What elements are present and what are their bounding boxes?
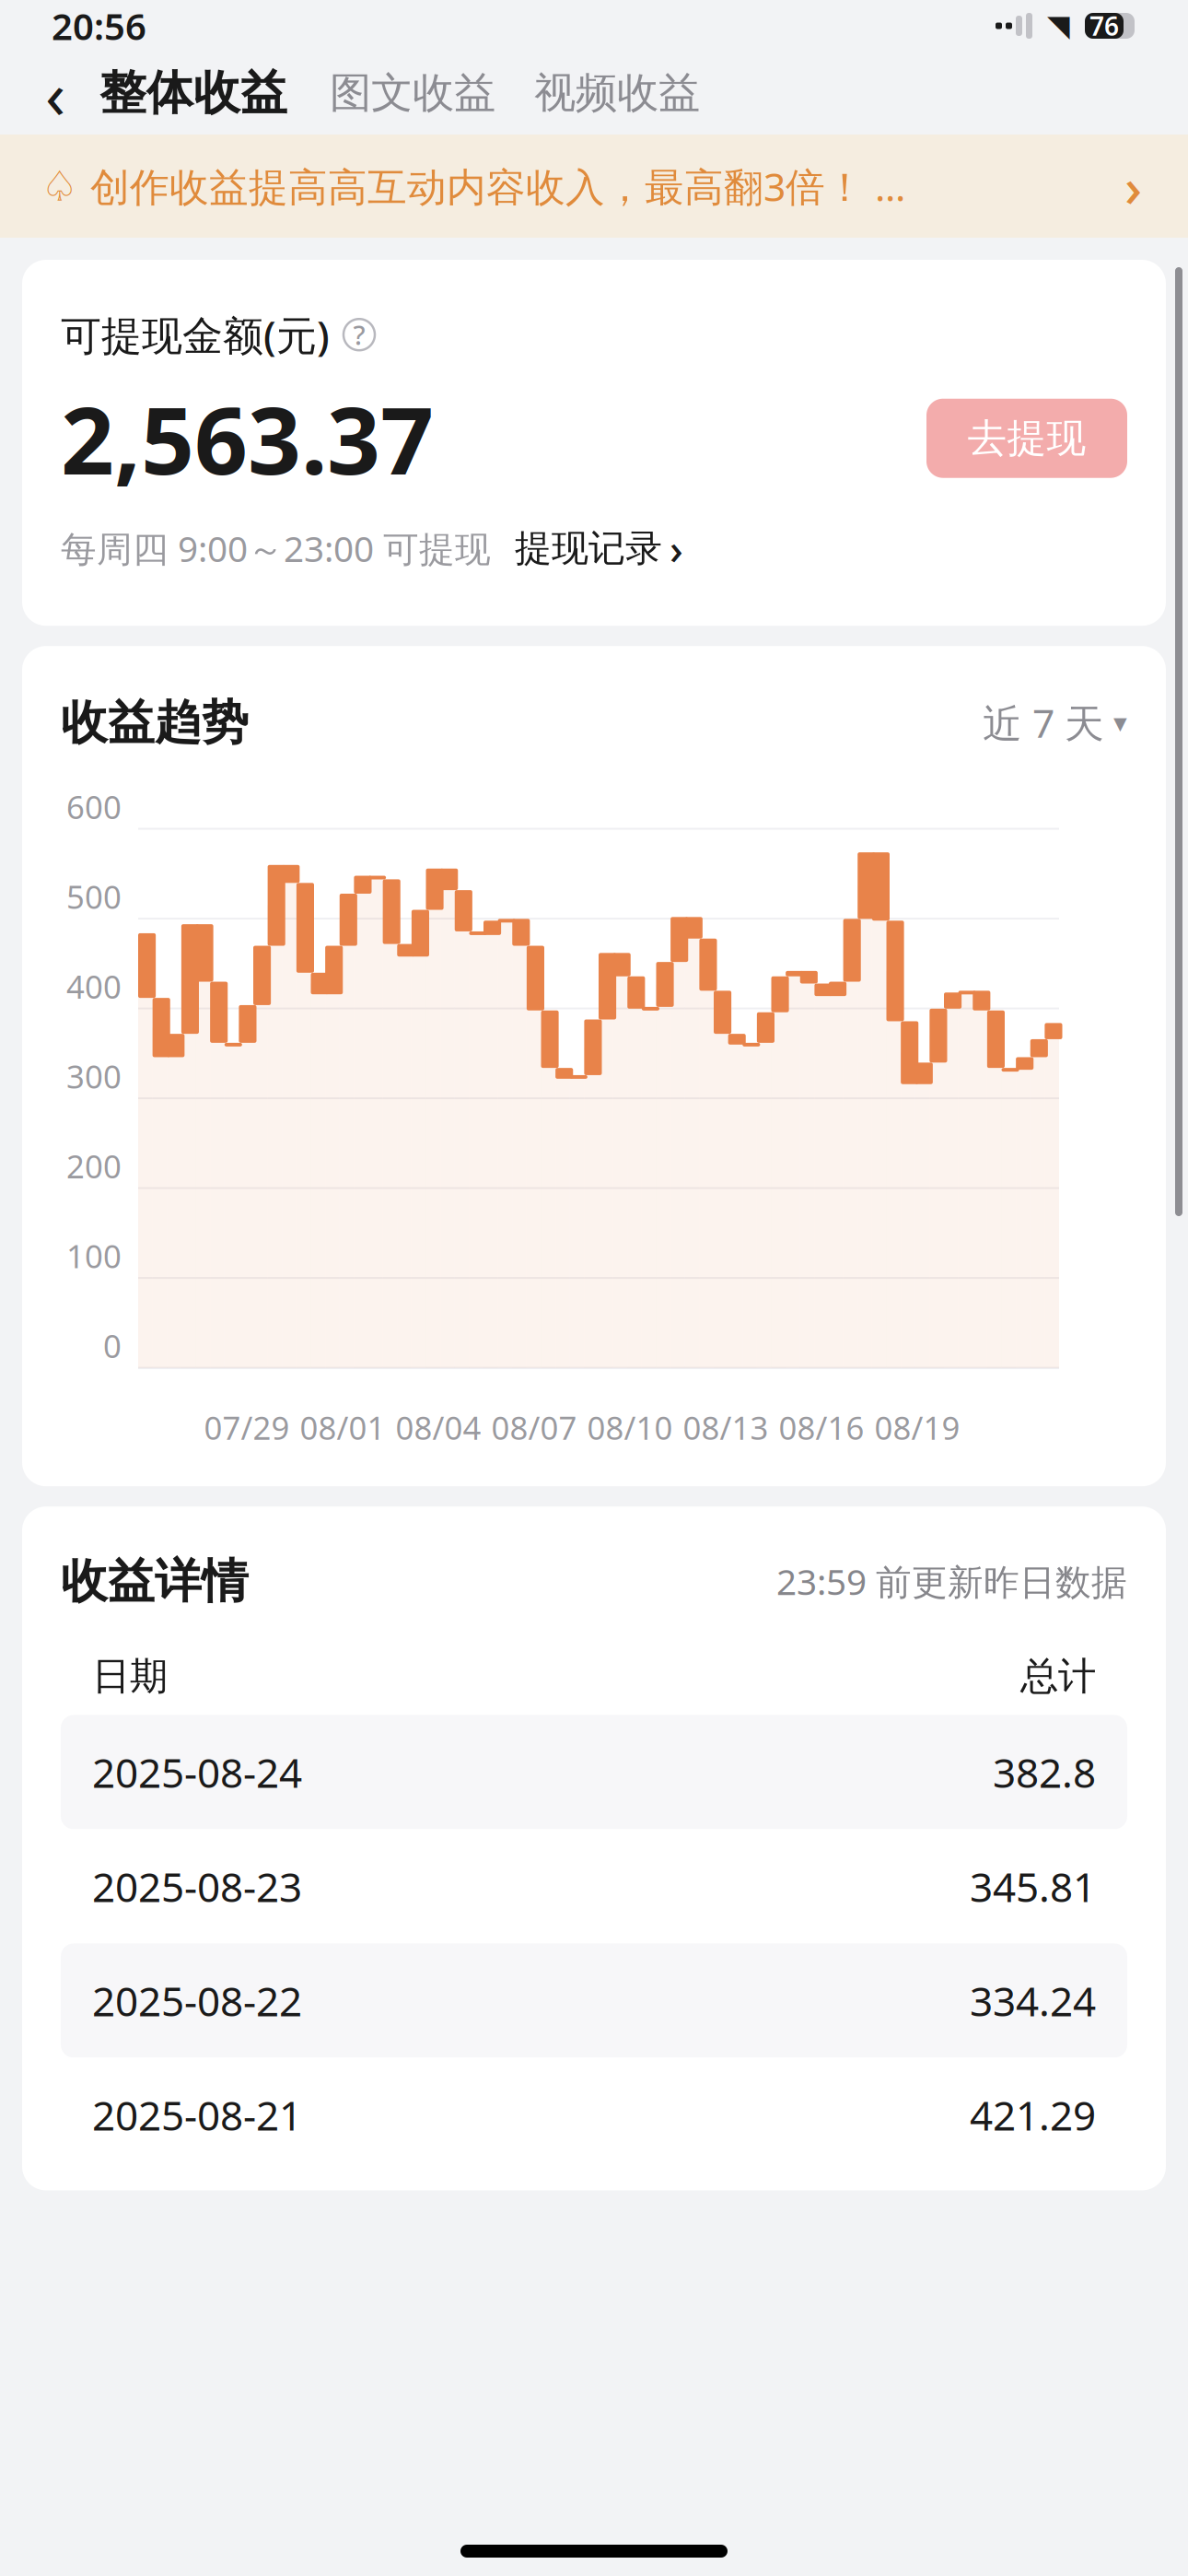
button[interactable]: 提现记录 bbox=[515, 521, 683, 576]
staticText: ▾ bbox=[1113, 707, 1127, 738]
staticText: 300 bbox=[66, 1055, 122, 1097]
staticText: 100 bbox=[66, 1234, 122, 1277]
staticText: 2025-08-21 bbox=[92, 2088, 302, 2142]
staticText: 400 bbox=[66, 965, 122, 1007]
staticText: 每周四 9:00～23:00 可提现 bbox=[61, 525, 491, 572]
staticText: 去提现 bbox=[967, 414, 1086, 462]
staticText: 可提现金额(元) bbox=[61, 308, 330, 362]
staticText: 收益详情 bbox=[61, 1553, 249, 1610]
staticText: 08/19 bbox=[874, 1406, 960, 1448]
staticText: 08/01 bbox=[300, 1406, 385, 1448]
staticText: 2025-08-22 bbox=[92, 1974, 302, 2027]
staticText: 0 bbox=[103, 1324, 122, 1367]
button[interactable]: 视频收益 bbox=[529, 56, 705, 130]
staticText: 日期 bbox=[92, 1653, 168, 1700]
button[interactable]: 2025-08-23 bbox=[61, 1829, 1127, 1943]
staticText: 2025-08-24 bbox=[92, 1745, 302, 1799]
staticText: 76 bbox=[1089, 9, 1119, 43]
staticText: 200 bbox=[66, 1145, 122, 1187]
button[interactable]: 近 7 天 bbox=[983, 697, 1127, 749]
staticText: ◥ bbox=[1047, 9, 1070, 42]
staticText: 2025-08-23 bbox=[92, 1859, 302, 1913]
staticText: 421.29 bbox=[970, 2088, 1096, 2142]
staticText: › bbox=[1124, 150, 1142, 222]
staticText: 提现记录 bbox=[515, 526, 662, 571]
staticText: 08/13 bbox=[683, 1406, 769, 1448]
staticText: 08/10 bbox=[587, 1406, 673, 1448]
staticText: › bbox=[670, 521, 683, 576]
staticText: 345.81 bbox=[970, 1859, 1096, 1913]
button[interactable]: 说明 bbox=[341, 316, 378, 353]
staticText: 600 bbox=[66, 785, 122, 828]
staticText: 08/04 bbox=[396, 1406, 481, 1448]
staticText: ? bbox=[353, 317, 365, 353]
staticText: 视频收益 bbox=[534, 67, 700, 119]
button[interactable]: 去提现 bbox=[926, 399, 1127, 478]
button[interactable]: ♤ bbox=[0, 135, 1188, 238]
staticText: ‹ bbox=[45, 49, 65, 137]
button[interactable]: 整体收益 bbox=[94, 56, 293, 130]
staticText: 334.24 bbox=[970, 1974, 1096, 2027]
button[interactable]: 2025-08-22 bbox=[61, 1943, 1127, 2058]
staticText: 20:56 bbox=[52, 1, 146, 50]
staticText: 08/07 bbox=[491, 1406, 577, 1448]
staticText: 07/29 bbox=[204, 1406, 290, 1448]
staticText: 近 7 天 bbox=[983, 697, 1104, 749]
staticText: 382.8 bbox=[993, 1745, 1096, 1799]
button[interactable]: 图文收益 bbox=[324, 56, 501, 130]
staticText: ♤ bbox=[41, 162, 79, 210]
button[interactable]: 返回 bbox=[17, 56, 94, 130]
staticText: 08/16 bbox=[779, 1406, 864, 1448]
staticText: 23:59 前更新昨日数据 bbox=[776, 1558, 1127, 1605]
staticText: 整体收益 bbox=[99, 64, 287, 122]
staticText: 500 bbox=[66, 875, 122, 918]
staticText: 收益趋势 bbox=[61, 694, 249, 751]
staticText: 图文收益 bbox=[330, 67, 495, 119]
staticText: 2,563.37 bbox=[61, 376, 434, 500]
button[interactable]: 2025-08-24 bbox=[61, 1715, 1127, 1829]
button[interactable]: 2025-08-21 bbox=[61, 2058, 1127, 2172]
staticText: 创作收益提高高互动内容收入，最高翻3倍！ ... bbox=[90, 160, 905, 212]
staticText: 总计 bbox=[1020, 1653, 1096, 1700]
